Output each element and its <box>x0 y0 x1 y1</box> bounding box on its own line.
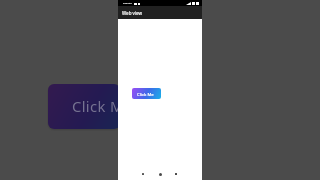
staticText: 3:09 PM <box>123 2 132 5</box>
button[interactable]: Home <box>156 170 164 178</box>
staticText: Click Me <box>72 96 120 116</box>
button[interactable]: Click Me <box>132 88 161 99</box>
staticText: Click Me <box>137 92 154 98</box>
button[interactable]: Click Me <box>48 84 120 129</box>
staticText: Web view <box>122 10 143 16</box>
button[interactable]: Recents <box>172 170 180 178</box>
button[interactable]: Back <box>139 170 147 178</box>
